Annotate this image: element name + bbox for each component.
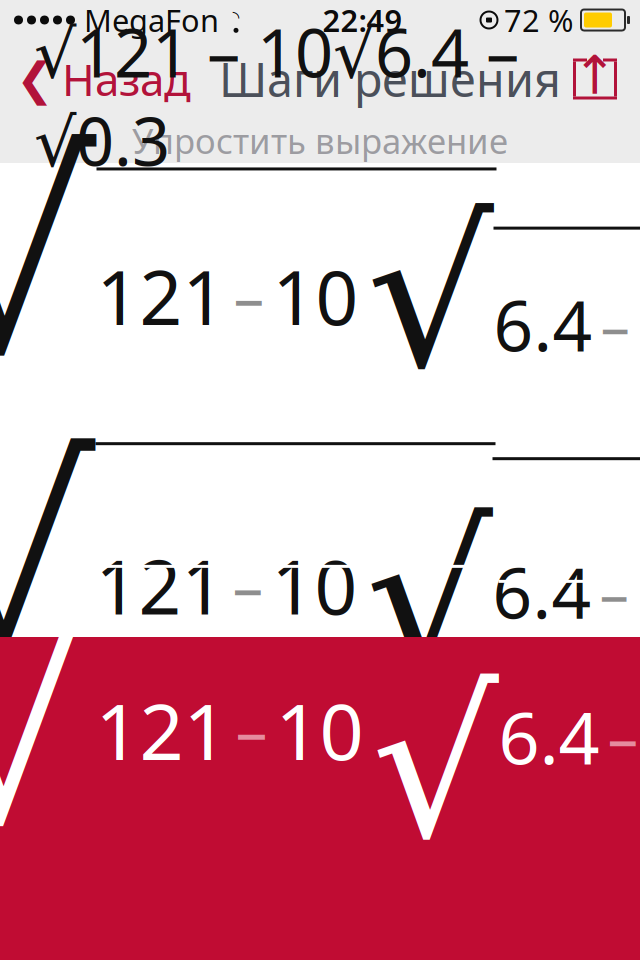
staticText: MegaFon	[84, 0, 219, 40]
staticText: 6.4	[498, 689, 599, 784]
staticText: ↑	[572, 45, 617, 105]
staticText: –	[235, 687, 267, 772]
staticText: 10	[272, 246, 358, 346]
staticText: √	[0, 411, 95, 714]
staticText: Упростить выражение	[132, 117, 508, 163]
button[interactable]: ❮	[0, 44, 191, 114]
staticText: 6.4	[492, 546, 591, 638]
staticText: √	[0, 577, 95, 880]
staticText: 10	[271, 536, 357, 635]
staticText: 6.4	[493, 278, 592, 371]
staticText: √121 – 10√6.4 – √0.3	[34, 7, 519, 184]
staticText: √	[636, 629, 640, 714]
staticText: Назад	[62, 50, 191, 108]
staticText: 121	[95, 536, 224, 635]
staticText: Шаги решения	[219, 48, 561, 110]
staticText: –	[599, 553, 628, 631]
staticText: 121	[96, 246, 225, 346]
staticText: √	[0, 107, 96, 409]
staticText: ◝	[232, 7, 239, 27]
staticText: √	[365, 487, 492, 714]
staticText: –	[607, 696, 638, 777]
staticText: 22:49	[322, 0, 402, 40]
staticText: √	[366, 182, 493, 409]
staticText: 72 %	[504, 0, 573, 40]
staticText: √	[371, 653, 498, 880]
button[interactable]: Share	[568, 46, 640, 112]
staticText: –	[233, 255, 264, 337]
staticText: 10	[275, 679, 363, 781]
staticText: –	[232, 545, 263, 626]
staticText: ❮	[16, 53, 54, 105]
staticText: 121	[95, 679, 227, 781]
staticText: –	[600, 286, 629, 363]
